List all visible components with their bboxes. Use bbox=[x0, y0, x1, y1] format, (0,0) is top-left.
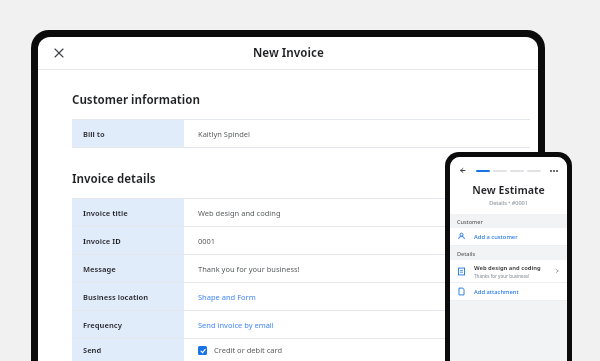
staticText: Invoice details bbox=[72, 171, 156, 187]
staticText: Frequency bbox=[83, 320, 122, 330]
staticText: Invoice ID bbox=[83, 236, 121, 246]
staticText: Shape and Form bbox=[198, 292, 256, 302]
staticText: Details • #0001 bbox=[450, 199, 567, 206]
staticText: Send invoice by email bbox=[198, 320, 274, 330]
staticText: New Estimate bbox=[450, 183, 567, 197]
button[interactable]: Invoice ID bbox=[72, 227, 530, 254]
button[interactable]: Invoice title bbox=[72, 199, 530, 226]
button[interactable]: Web design and coding bbox=[450, 260, 567, 282]
staticText: New Invoice bbox=[253, 45, 324, 61]
staticText: Customer bbox=[457, 218, 483, 225]
staticText: Add a customer bbox=[474, 233, 518, 241]
staticText: Customer information bbox=[72, 92, 200, 108]
button[interactable]: Add a customer bbox=[450, 228, 567, 245]
button[interactable]: Close bbox=[48, 42, 70, 64]
staticText: Bill to bbox=[83, 129, 105, 139]
button[interactable]: Message bbox=[72, 255, 530, 282]
staticText: Web design and coding bbox=[474, 264, 541, 272]
staticText: Credit or debit card bbox=[214, 345, 283, 355]
staticText: Invoice title bbox=[83, 208, 128, 218]
button[interactable]: Business location bbox=[72, 283, 530, 310]
staticText: Details bbox=[457, 250, 476, 257]
staticText: Thanks for your business! bbox=[474, 273, 530, 279]
button[interactable]: Add attachment bbox=[450, 283, 567, 300]
staticText: 0001 bbox=[198, 236, 216, 246]
staticText: Business location bbox=[83, 292, 149, 302]
staticText: Add attachment bbox=[474, 288, 519, 296]
button[interactable]: Frequency bbox=[72, 311, 530, 338]
button[interactable]: More options bbox=[547, 164, 560, 177]
button[interactable]: Bill to bbox=[72, 120, 530, 147]
staticText: Send bbox=[83, 345, 102, 355]
button[interactable]: Send bbox=[72, 339, 530, 361]
button[interactable]: Back bbox=[457, 164, 470, 177]
staticText: Kaitlyn Spindel bbox=[198, 129, 250, 139]
staticText: Thank you for your business! bbox=[198, 264, 300, 274]
staticText: Web design and coding bbox=[198, 208, 281, 218]
staticText: Message bbox=[83, 264, 116, 274]
